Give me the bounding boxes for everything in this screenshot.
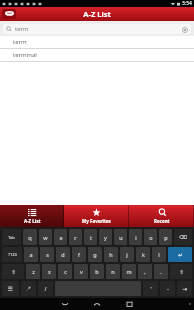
button[interactable]: d (56, 247, 70, 262)
button[interactable]: z (26, 264, 40, 279)
staticText: c (64, 268, 67, 275)
staticText: term (15, 25, 29, 33)
button[interactable]: x (42, 264, 56, 279)
staticText: m (126, 268, 132, 275)
button[interactable]: Clear search (180, 25, 189, 34)
staticText: v (80, 268, 83, 275)
staticText: terminal (13, 51, 37, 59)
staticText: u (119, 234, 123, 241)
staticText: My Favorites (82, 218, 111, 224)
button[interactable]: q (23, 229, 37, 245)
staticText: A-Z List (24, 218, 41, 224)
button[interactable]: p (159, 229, 172, 245)
button[interactable]: Tab (2, 229, 21, 245)
staticText: f (78, 251, 80, 258)
staticText: n (111, 268, 115, 275)
staticText: h (109, 251, 113, 258)
button[interactable]: term (3, 24, 191, 34)
button[interactable]: ☰ (2, 281, 19, 296)
staticText: g (93, 251, 97, 258)
button[interactable]: Recent (129, 205, 194, 227)
button[interactable]: ' (143, 281, 158, 296)
button[interactable]: My Favorites (64, 205, 129, 227)
staticText: term (13, 38, 27, 46)
staticText: - (167, 285, 169, 292)
button[interactable]: j (120, 247, 134, 262)
button[interactable]: i (129, 229, 142, 245)
button[interactable]: y (99, 229, 112, 245)
button[interactable]: w (39, 229, 52, 245)
staticText: i (135, 234, 137, 241)
button[interactable]: a (24, 247, 38, 262)
button[interactable]: - (160, 281, 175, 296)
button[interactable]: c (58, 264, 72, 279)
staticText: z (32, 268, 35, 275)
button[interactable]: Back (60, 299, 70, 309)
staticText: , (144, 268, 146, 275)
staticText: / (44, 285, 47, 292)
button[interactable]: Home (92, 299, 102, 309)
button[interactable]: v (74, 264, 88, 279)
staticText: 3:54 (182, 0, 192, 7)
button[interactable]: e (54, 229, 67, 245)
staticText: ☰ (8, 286, 13, 292)
button[interactable]: f (72, 247, 86, 262)
button[interactable]: ⇧ (170, 264, 192, 279)
button[interactable]: / (38, 281, 53, 296)
button[interactable]: terminal (0, 49, 194, 61)
staticText: 🎤 (26, 286, 31, 291)
staticText: p (164, 234, 168, 241)
staticText: y (104, 234, 107, 241)
button[interactable]: k (136, 247, 150, 262)
staticText: j (126, 251, 128, 258)
staticText: x (48, 268, 51, 275)
button[interactable]: g (88, 247, 102, 262)
button[interactable]: ⇥ (177, 281, 192, 296)
button[interactable]: 🎤 (21, 281, 36, 296)
staticText: e (59, 234, 63, 241)
button[interactable]: m (122, 264, 136, 279)
staticText: k (142, 251, 145, 258)
button[interactable]: r (69, 229, 82, 245)
button[interactable]: u (114, 229, 127, 245)
staticText: Recent (154, 218, 170, 224)
staticText: ↵ (178, 252, 183, 258)
button[interactable]: Recent apps (125, 299, 135, 309)
button[interactable]: l (152, 247, 166, 262)
button[interactable]: App logo, open navigation (2, 9, 16, 19)
button[interactable]: A-Z List (0, 205, 64, 227)
staticText: Tab (8, 235, 15, 240)
button[interactable]: s (40, 247, 54, 262)
staticText: b (95, 268, 99, 275)
staticText: t (90, 234, 92, 241)
staticText: A-Z List (83, 9, 111, 19)
button[interactable]: . (154, 264, 168, 279)
button[interactable]: h (104, 247, 118, 262)
button[interactable]: ⌫ (174, 229, 192, 245)
button[interactable]: n (106, 264, 120, 279)
staticText: a (29, 251, 33, 258)
button[interactable]: t (84, 229, 97, 245)
staticText: ⌫ (179, 234, 187, 240)
button[interactable]: o (144, 229, 157, 245)
staticText: q (28, 234, 32, 241)
staticText: ⇥ (182, 286, 187, 292)
button[interactable]: , (138, 264, 152, 279)
staticText: . (160, 268, 162, 275)
button[interactable]: term (0, 36, 194, 48)
staticText: d (61, 251, 65, 258)
staticText: s (46, 251, 49, 258)
button[interactable]: ⇧ (2, 264, 24, 279)
staticText: ⇧ (179, 269, 184, 275)
staticText: l (158, 251, 160, 258)
staticText: w (43, 234, 48, 241)
staticText: ⇧ (11, 269, 16, 275)
button[interactable]: b (90, 264, 104, 279)
staticText: o (149, 234, 153, 241)
button[interactable]: ?123 (2, 247, 22, 262)
staticText: r (74, 234, 77, 241)
button[interactable]: ↵ (168, 247, 192, 262)
staticText: ?123 (8, 252, 17, 257)
staticText: ' (150, 285, 152, 292)
